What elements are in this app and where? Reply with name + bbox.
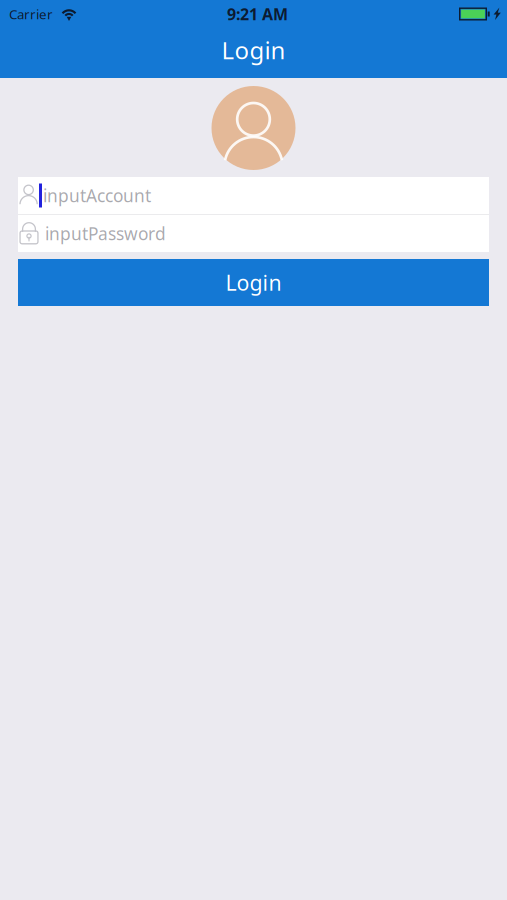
staticText: 9:21 AM xyxy=(227,3,288,25)
button[interactable]: Password xyxy=(18,215,489,252)
button[interactable]: Account xyxy=(18,177,489,214)
staticText: inputPassword xyxy=(45,222,166,245)
staticText: Login xyxy=(221,34,285,66)
staticText: inputAccount xyxy=(43,184,151,207)
staticText: Carrier xyxy=(9,5,53,23)
button[interactable]: Login xyxy=(18,259,489,306)
staticText: Login xyxy=(225,268,281,297)
